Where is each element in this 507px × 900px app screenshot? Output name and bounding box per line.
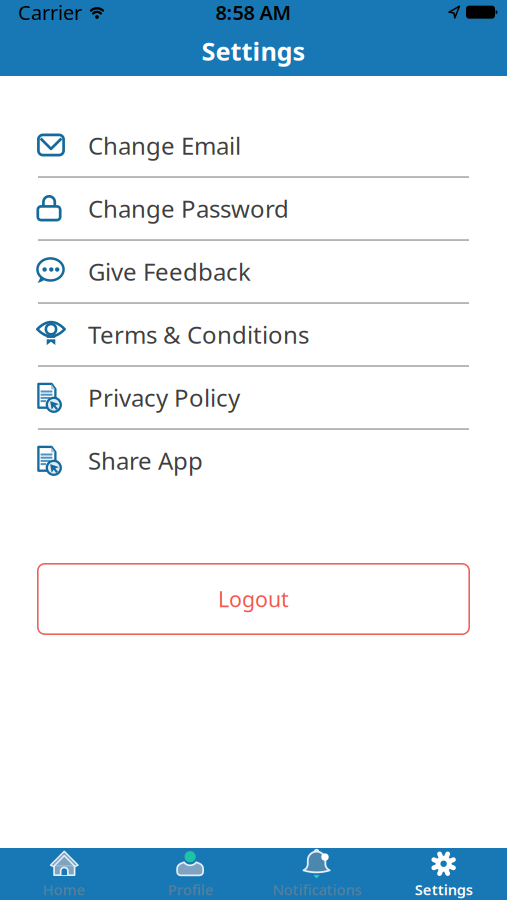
staticText: Change Email <box>88 130 241 161</box>
staticText: Notifications <box>272 880 361 899</box>
staticText: Logout <box>218 585 289 613</box>
staticText: Home <box>42 880 84 899</box>
staticText: Change Password <box>88 193 289 224</box>
staticText: Privacy Policy <box>88 382 240 413</box>
staticText: Profile <box>168 880 213 899</box>
button[interactable]: Notifications <box>253 849 380 899</box>
button[interactable]: Terms & Conditions <box>0 304 507 367</box>
staticText: Carrier <box>18 0 82 25</box>
button[interactable]: Logout <box>0 563 507 635</box>
button[interactable]: Privacy Policy <box>0 367 507 430</box>
staticText: Settings <box>415 880 473 899</box>
staticText: 8:58 AM <box>215 0 291 25</box>
button[interactable]: Profile <box>127 849 254 899</box>
staticText: Share App <box>88 445 203 476</box>
button[interactable]: Share App <box>0 430 507 493</box>
staticText: Settings <box>201 34 305 68</box>
button[interactable]: Home <box>0 849 127 899</box>
staticText: Give Feedback <box>88 256 251 287</box>
button[interactable]: Give Feedback <box>0 241 507 304</box>
staticText: Terms & Conditions <box>88 319 309 350</box>
button[interactable]: Settings <box>380 849 507 899</box>
button[interactable]: Change Password <box>0 178 507 241</box>
button[interactable]: Change Email <box>0 115 507 178</box>
